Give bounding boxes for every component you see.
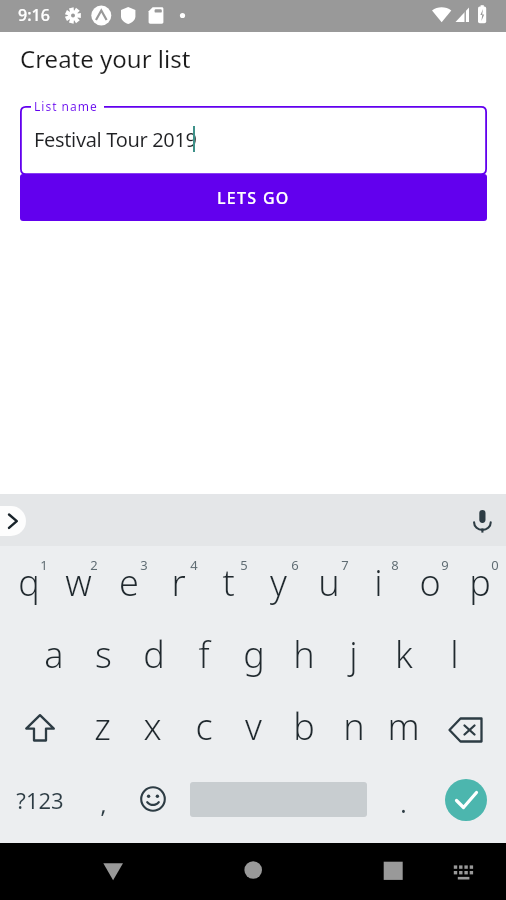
staticText: z [94,702,111,751]
button[interactable]: . [378,787,429,821]
staticText: 6 [291,556,299,574]
staticText: y [270,558,287,607]
staticText: r [171,558,186,607]
button[interactable]: u [303,558,354,608]
staticText: c [195,702,213,751]
button[interactable]: i [353,558,404,608]
button[interactable]: o [404,558,455,608]
staticText: 9:16 [18,4,50,26]
button[interactable]: y [253,558,304,608]
staticText: f [198,630,210,679]
staticText: d [143,630,165,679]
button[interactable]: , [78,787,129,821]
button[interactable]: LETS GO [20,174,487,221]
button[interactable]: Voice input [464,498,501,542]
staticText: m [387,702,420,751]
staticText: s [95,630,112,679]
button[interactable]: d [128,630,179,680]
staticText: ?123 [16,785,64,815]
staticText: h [293,630,315,679]
button[interactable]: 4 [168,556,219,574]
button[interactable]: s [78,630,129,680]
staticText: 3 [140,556,148,574]
button[interactable]: Switch keyboard [443,849,485,894]
staticText: . [400,787,407,820]
staticText: 7 [341,556,349,574]
staticText: List name [34,98,98,114]
staticText: LETS GO [217,187,290,209]
button[interactable]: j [328,630,379,680]
staticText: l [450,630,459,679]
staticText: e [119,558,139,607]
staticText: 5 [240,556,248,574]
button[interactable]: l [429,630,480,680]
button[interactable]: c [178,702,229,752]
button[interactable]: t [203,558,254,608]
button[interactable]: Home [228,845,278,899]
button[interactable]: m [378,702,429,752]
button[interactable]: b [278,702,329,752]
button[interactable]: k [378,630,429,680]
button[interactable]: 7 [319,556,370,574]
staticText: 2 [90,556,98,574]
button[interactable]: Emoji [139,785,167,813]
button[interactable]: a [28,630,79,680]
staticText: j [349,630,358,679]
button[interactable]: v [228,702,279,752]
button[interactable]: 2 [68,556,119,574]
button[interactable]: h [278,630,329,680]
button[interactable]: q [3,558,54,608]
button[interactable]: x [127,702,178,752]
staticText: x [143,702,162,751]
button[interactable]: r [153,558,204,608]
button[interactable]: Expand toolbar [0,506,26,536]
staticText: a [44,630,64,679]
staticText: Festival Tour 2019 [34,126,197,153]
staticText: t [222,558,235,607]
button[interactable]: Enter [445,779,487,821]
staticText: 9 [441,556,449,574]
button[interactable]: Back [88,851,138,893]
staticText: u [318,558,340,607]
staticText: q [18,558,40,607]
button[interactable]: 6 [269,556,320,574]
staticText: Create your list [20,42,191,75]
staticText: 0 [491,556,499,574]
button[interactable]: 0 [469,556,506,574]
staticText: i [374,558,383,607]
button[interactable]: 8 [369,556,420,574]
button[interactable]: 5 [218,556,269,574]
button[interactable]: List name [20,106,487,175]
button[interactable]: 3 [118,556,169,574]
button[interactable]: f [178,630,229,680]
button[interactable]: Shift [23,712,57,746]
button[interactable]: Backspace [447,715,485,745]
button[interactable]: n [328,702,379,752]
staticText: w [65,558,92,607]
staticText: , [100,787,107,820]
button[interactable]: 1 [18,556,69,574]
button[interactable]: p [454,558,505,608]
button[interactable]: e [103,558,154,608]
staticText: o [419,558,441,607]
staticText: b [293,702,315,751]
button[interactable]: ?123 [5,785,75,816]
button[interactable]: Recents [368,845,418,899]
staticText: 1 [40,556,48,574]
button[interactable]: g [228,630,279,680]
staticText: g [243,630,265,679]
button[interactable]: z [77,702,128,752]
staticText: 4 [190,556,198,574]
staticText: 8 [391,556,399,574]
staticText: n [343,702,365,751]
button[interactable]: 9 [419,556,470,574]
staticText: p [469,558,491,607]
button[interactable]: w [53,558,104,608]
staticText: v [245,702,262,751]
staticText: k [395,630,413,679]
